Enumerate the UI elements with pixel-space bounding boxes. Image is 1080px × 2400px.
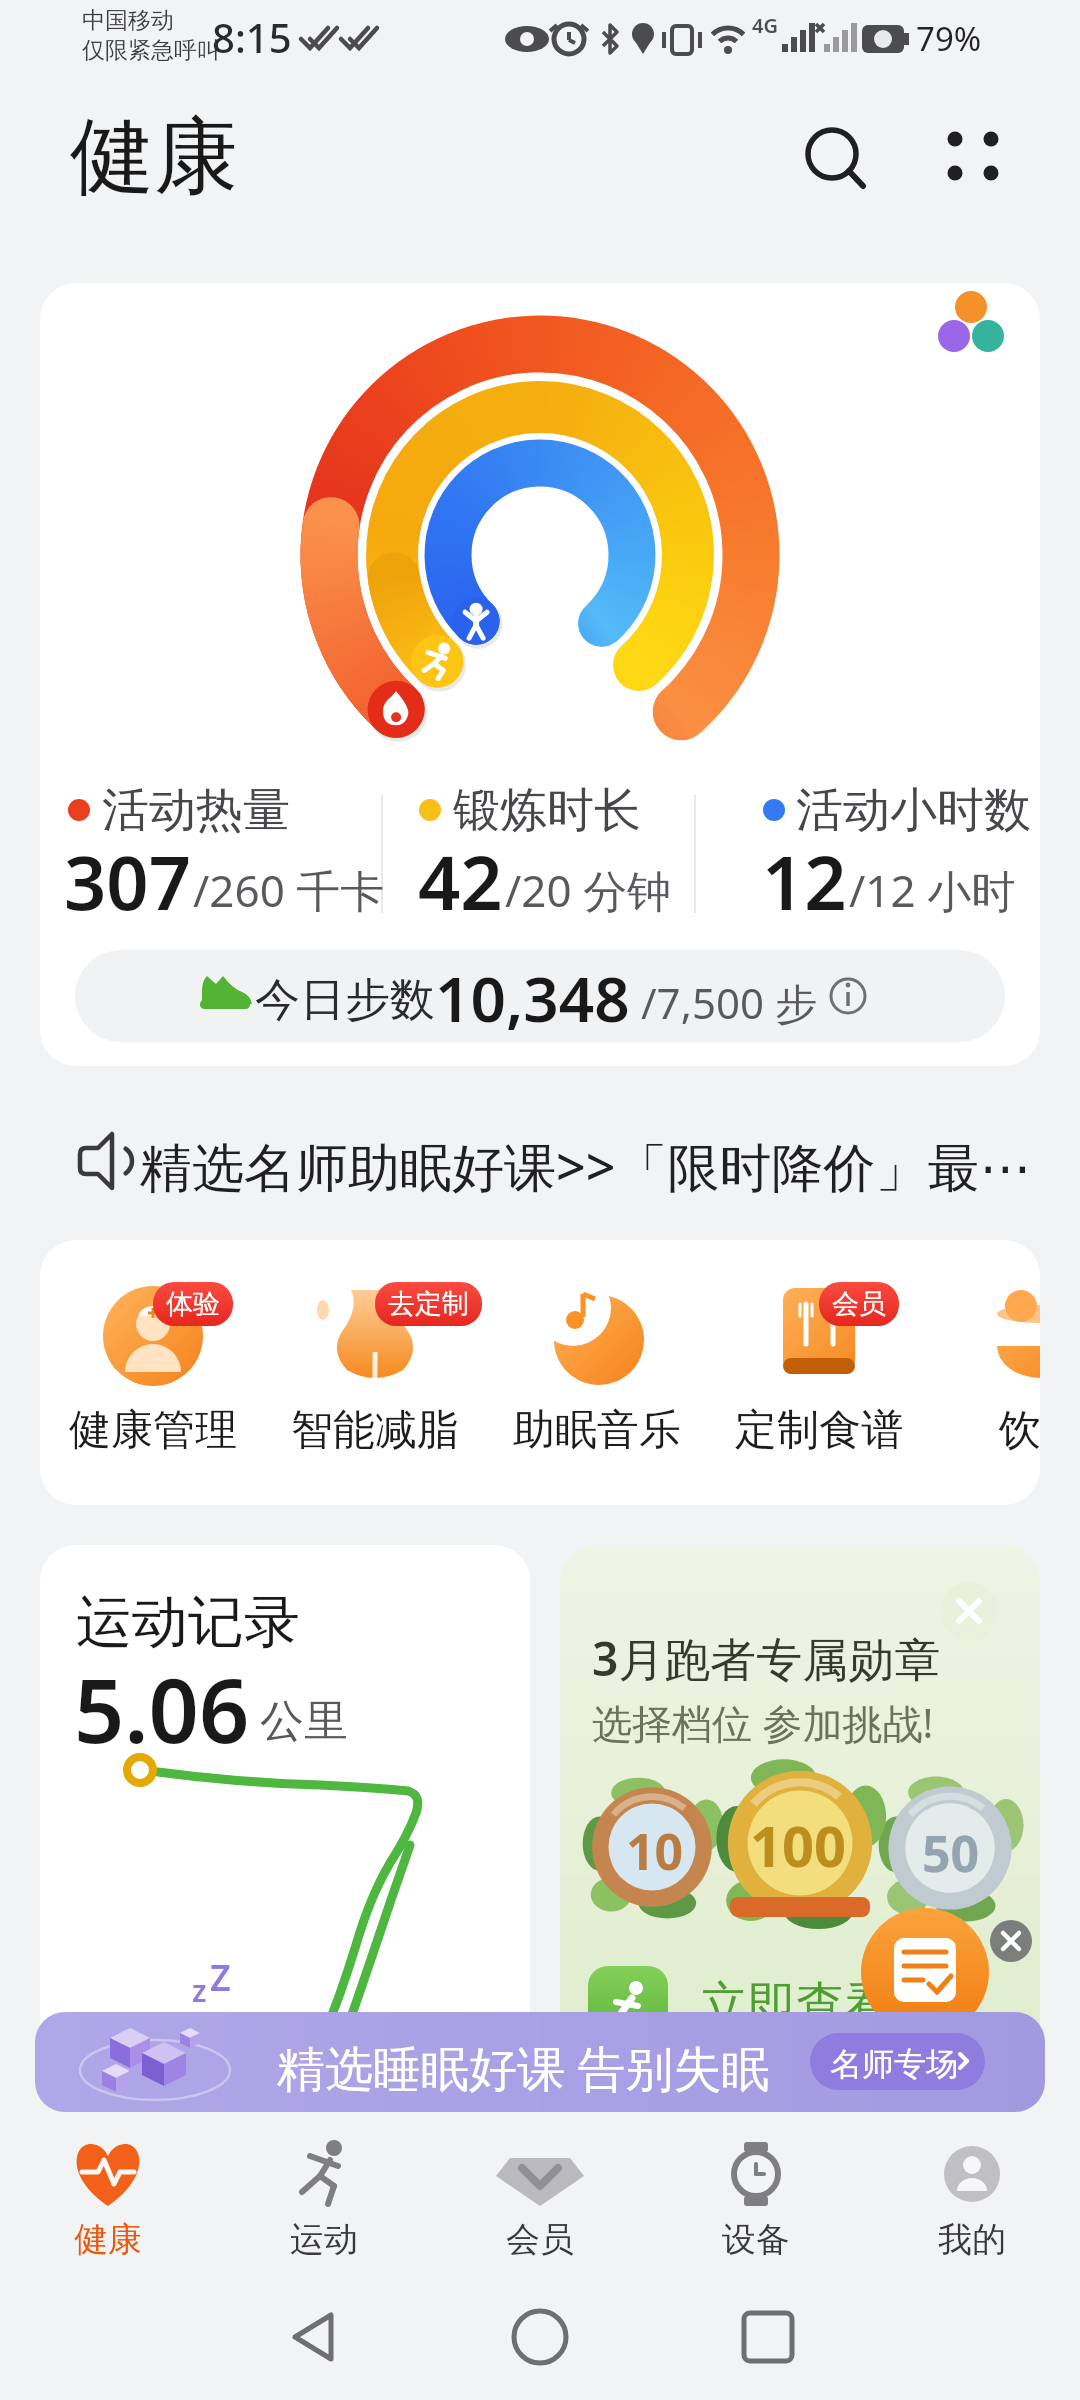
staticText: 选择档位 参加挑战! bbox=[592, 1695, 934, 1750]
staticText: /12 小时 bbox=[849, 860, 1016, 920]
button[interactable]: 健康管理 bbox=[42, 1240, 264, 1505]
staticText: 8:15 bbox=[212, 10, 292, 64]
button[interactable]: 运动 bbox=[216, 2128, 432, 2268]
staticText: 运动记录 bbox=[76, 1587, 300, 1658]
button[interactable]: 今日步数 bbox=[75, 950, 1005, 1042]
button[interactable]: 活动热量 bbox=[40, 283, 1040, 1066]
staticText: 3月跑者专属勋章 bbox=[592, 1627, 941, 1690]
staticText: 精选睡眠好课 告别失眠 bbox=[277, 2035, 770, 2101]
staticText: 运动 bbox=[290, 2218, 358, 2261]
staticText: 助眠音乐 bbox=[513, 1404, 681, 1457]
button[interactable]: 定制食谱 bbox=[708, 1240, 930, 1505]
staticText: 设备 bbox=[722, 2218, 790, 2261]
staticText: 79% bbox=[916, 16, 982, 61]
staticText: 今日步数 bbox=[255, 972, 435, 1029]
staticText: 42 bbox=[418, 831, 503, 932]
staticText: 307 bbox=[64, 831, 191, 932]
staticText: 12 bbox=[762, 831, 847, 932]
staticText: z bbox=[192, 1970, 207, 2011]
button[interactable]: 会员 bbox=[432, 2128, 648, 2268]
staticText: 健康 bbox=[70, 104, 238, 210]
staticText: 健康 bbox=[74, 2218, 142, 2261]
staticText: 会员 bbox=[506, 2218, 574, 2261]
staticText: 50 bbox=[922, 1819, 980, 1887]
staticText: 活动热量 bbox=[102, 781, 290, 840]
button[interactable] bbox=[938, 118, 1008, 188]
button[interactable]: 3月跑者专属勋章 bbox=[560, 1545, 1040, 2060]
button[interactable]: 运动记录 bbox=[40, 1545, 530, 2060]
button[interactable]: 名师专场 bbox=[810, 2033, 985, 2090]
button[interactable] bbox=[250, 2305, 380, 2369]
button[interactable] bbox=[940, 1582, 998, 1640]
button[interactable] bbox=[861, 1908, 989, 2036]
staticText: 定制食谱 bbox=[735, 1404, 903, 1457]
button[interactable] bbox=[700, 2305, 830, 2369]
staticText: /7,500 步 bbox=[641, 974, 817, 1031]
staticText: 公里 bbox=[260, 1694, 348, 1749]
button[interactable]: 健康 bbox=[0, 2128, 216, 2268]
staticText: 我的 bbox=[938, 2218, 1006, 2261]
staticText: 10,348 bbox=[435, 956, 630, 1040]
button[interactable]: 助眠音乐 bbox=[486, 1240, 708, 1505]
button[interactable] bbox=[795, 118, 871, 194]
staticText: 5.06 bbox=[74, 1649, 250, 1769]
staticText: 名师专场 bbox=[830, 2044, 958, 2084]
staticText: Z bbox=[210, 1953, 231, 2002]
staticText: 100 bbox=[750, 1807, 847, 1883]
button[interactable]: 精选名师助眠好课>>「限时降价」最⋯ bbox=[40, 1122, 1040, 1202]
staticText: 去定制 bbox=[388, 1287, 469, 1321]
button[interactable] bbox=[990, 1920, 1032, 1962]
staticText: 健康管理 bbox=[69, 1404, 237, 1457]
staticText: 会员 bbox=[832, 1287, 886, 1321]
button[interactable] bbox=[475, 2305, 605, 2369]
button[interactable]: 精选睡眠好课 告别失眠 bbox=[35, 2012, 1045, 2112]
staticText: 中国移动 bbox=[82, 6, 174, 35]
staticText: /20 分钟 bbox=[505, 860, 672, 920]
staticText: 精选名师助眠好课>>「限时降价」最⋯ bbox=[140, 1130, 1032, 1201]
staticText: 10 bbox=[626, 1817, 684, 1885]
staticText: 立即查看 bbox=[700, 1975, 892, 2035]
staticText: 仅限紧急呼叫 bbox=[82, 36, 220, 65]
staticText: 智能减脂 bbox=[291, 1404, 459, 1457]
button[interactable]: 设备 bbox=[648, 2128, 864, 2268]
button[interactable]: 我的 bbox=[864, 2128, 1080, 2268]
staticText: 锻炼时长 bbox=[453, 781, 641, 840]
staticText: 活动小时数 bbox=[796, 781, 1031, 840]
staticText: 体验 bbox=[166, 1287, 220, 1321]
staticText: 4G bbox=[752, 12, 778, 39]
button[interactable]: 饮食 bbox=[930, 1240, 1040, 1505]
button[interactable]: 智能减脂 bbox=[264, 1240, 486, 1505]
staticText: 饮食 bbox=[999, 1404, 1040, 1457]
staticText: /260 千卡 bbox=[193, 860, 385, 920]
